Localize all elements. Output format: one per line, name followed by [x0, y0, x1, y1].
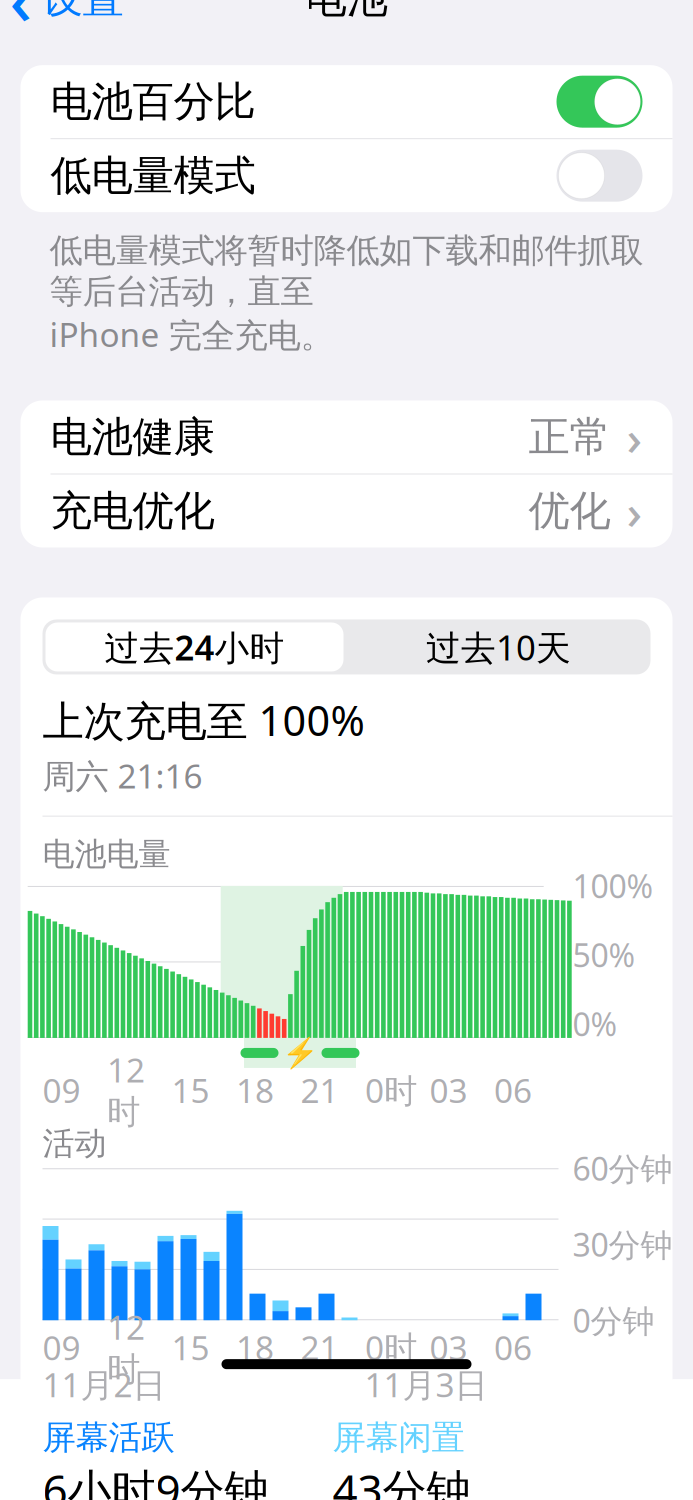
staticText: 09	[42, 1068, 80, 1112]
staticText: 0分钟	[572, 1299, 654, 1341]
staticText: 03	[429, 1068, 467, 1112]
staticText: 12时	[107, 1305, 145, 1390]
staticText: 09	[42, 1325, 80, 1369]
staticText: 30分钟	[572, 1223, 672, 1265]
button[interactable]: 过去10天	[346, 622, 650, 671]
staticText: 设置	[41, 0, 123, 24]
staticText: 充电优化	[50, 486, 214, 536]
staticText: 15	[171, 1068, 209, 1112]
staticText: 0时	[365, 1068, 417, 1112]
staticText: 18	[236, 1325, 274, 1369]
staticText: 电池百分比	[50, 76, 255, 127]
staticText: 低电量模式	[50, 150, 255, 201]
staticText: 过去10天	[426, 624, 571, 670]
staticText: ›	[626, 479, 642, 543]
staticText: 12时	[107, 1047, 145, 1132]
staticText: 15	[171, 1325, 209, 1369]
staticText: 18	[236, 1068, 274, 1112]
staticText: 06	[494, 1068, 532, 1112]
staticText: 过去24小时	[104, 624, 284, 670]
staticText: 50%	[572, 934, 635, 976]
staticText: 0%	[572, 1003, 617, 1045]
staticText: 11月2日	[42, 1362, 165, 1406]
button[interactable]: 充电优化	[20, 474, 672, 547]
button[interactable]: 低电量模式	[20, 139, 672, 212]
staticText: 11月3日	[364, 1362, 487, 1406]
staticText: ⚡	[281, 1036, 318, 1070]
staticText: 正常	[528, 412, 610, 462]
staticText: 屏幕活跃	[42, 1417, 174, 1458]
staticText: 0时	[365, 1325, 417, 1369]
staticText: 屏幕闲置	[332, 1417, 464, 1458]
staticText: 电池	[305, 0, 387, 24]
staticText: 03	[429, 1325, 467, 1369]
staticText: 21	[300, 1325, 338, 1369]
staticText: 电池健康	[50, 412, 214, 462]
staticText: 43分钟	[332, 1460, 470, 1500]
staticText: 优化	[528, 486, 610, 536]
staticText: 06	[494, 1325, 532, 1369]
staticText: ‹	[9, 0, 32, 44]
staticText: 21	[300, 1068, 338, 1112]
staticText: 电池电量	[42, 835, 170, 874]
button[interactable]: 电池健康	[20, 400, 672, 473]
staticText: 活动	[42, 1124, 106, 1163]
staticText: 60分钟	[572, 1147, 672, 1189]
staticText: ›	[626, 405, 642, 469]
staticText: 6小时9分钟	[42, 1460, 268, 1500]
button[interactable]: 过去24小时	[42, 622, 346, 671]
staticText: 周六 21:16	[42, 753, 202, 798]
staticText: 低电量模式将暂时降低如下载和邮件抓取等后台活动，直至 iPhone 完全充电。	[49, 230, 643, 356]
staticText: 100%	[572, 865, 653, 907]
button[interactable]: 电池百分比	[20, 65, 672, 138]
button[interactable]: ‹	[0, 0, 123, 50]
staticText: 上次充电至 100%	[42, 692, 364, 747]
